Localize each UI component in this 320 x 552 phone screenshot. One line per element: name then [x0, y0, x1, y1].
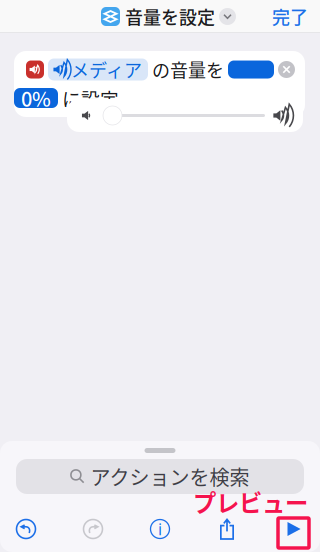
button[interactable]: 完了: [272, 0, 320, 33]
staticText: アクションを検索: [90, 462, 249, 491]
button[interactable]: アクションを検索: [0, 459, 320, 494]
button[interactable]: 共有: [201, 512, 253, 546]
button[interactable]: やり直す: [67, 512, 119, 546]
button[interactable]: 情報: [134, 512, 186, 546]
button[interactable]: プレビュー: [268, 512, 320, 546]
staticText: プレビュー: [193, 485, 308, 519]
staticText: 完了: [272, 3, 308, 30]
staticText: i: [158, 518, 162, 540]
button[interactable]: 取り消す: [0, 512, 52, 546]
staticText: に設定: [62, 84, 119, 111]
button[interactable]: 音量を設定: [101, 3, 236, 30]
staticText: メディア: [71, 56, 142, 83]
button[interactable]: 削除: [278, 61, 295, 78]
staticText: 音量を設定: [125, 3, 215, 30]
staticText: 0%: [21, 83, 51, 112]
staticText: の音量を: [152, 56, 224, 83]
